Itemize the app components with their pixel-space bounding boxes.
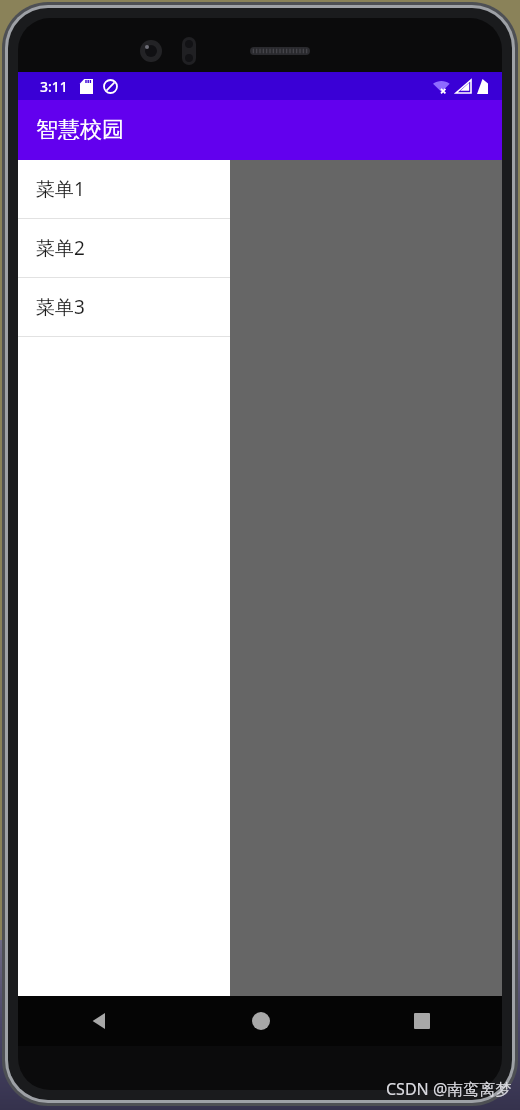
staticText: 菜单3 [36,294,85,320]
button[interactable]: 菜单1 [18,160,230,218]
staticText: 菜单2 [36,235,85,261]
button[interactable]: Home [180,996,341,1046]
staticText: CSDN @南鸾离梦 [386,1078,512,1100]
button[interactable]: Back [18,996,180,1046]
button[interactable]: 智慧校园 [18,100,502,160]
staticText: 3:11 [40,77,68,96]
staticText: 智慧校园 [36,116,124,144]
button[interactable]: 菜单3 [18,278,230,336]
button[interactable]: Recents [341,996,502,1046]
button[interactable]: 菜单2 [18,219,230,277]
staticText: 菜单1 [36,176,85,202]
